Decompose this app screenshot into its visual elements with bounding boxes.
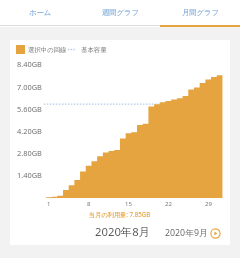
staticText: 22 [165,200,172,208]
staticText: 選択中の回線 [28,46,67,54]
staticText: 2020年8月 [95,224,150,239]
staticText: 8.40GB [17,59,42,69]
staticText: 基本容量 [81,46,107,54]
button[interactable]: 2020年9月 [165,227,221,239]
staticText: ホーム [29,8,52,17]
staticText: 8 [87,200,91,208]
staticText: 4.20GB [17,126,42,136]
staticText: 15 [125,200,132,208]
staticText: 1.40GB [17,170,42,180]
staticText: 2.80GB [17,148,42,158]
staticText: 1 [47,200,51,208]
other: Next month [210,228,221,239]
button[interactable]: 週間グラフ [80,0,160,27]
staticText: 5.60GB [17,104,42,114]
staticText: 週間グラフ [102,8,139,17]
staticText: 7.00GB [17,82,42,92]
staticText: 月間グラフ [182,8,219,17]
staticText: 当月の利用量: 7.85GB [89,210,151,218]
button[interactable]: ホーム [0,0,80,27]
staticText: 29 [205,200,212,208]
staticText: 2020年9月 [165,227,208,239]
button[interactable]: 月間グラフ [160,0,240,27]
